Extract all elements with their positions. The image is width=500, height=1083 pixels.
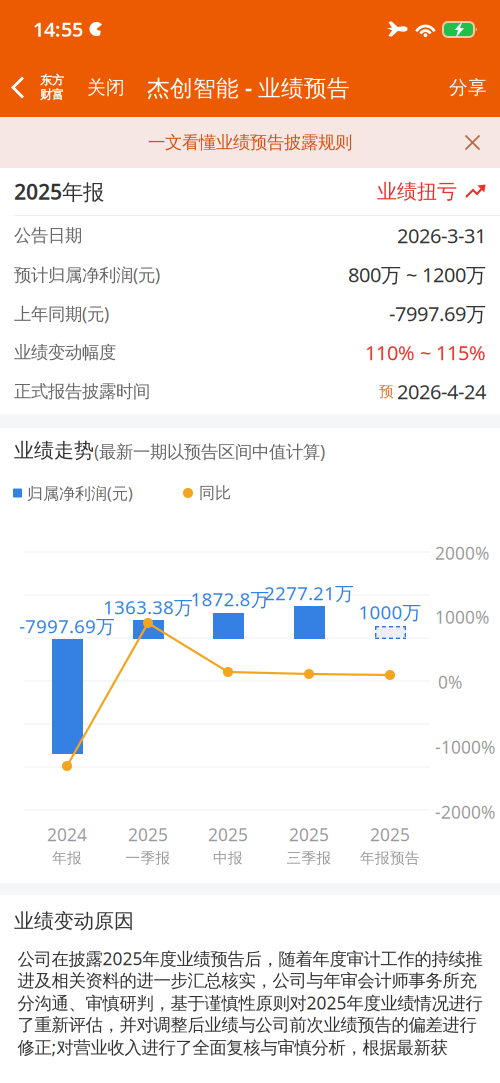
- staticText: (最新一期以预告区间中值计算): [94, 440, 325, 463]
- staticText: 东方: [40, 73, 64, 87]
- staticText: 年报预告: [360, 849, 420, 867]
- staticText: 三季报: [286, 849, 331, 867]
- staticText: 2026-4-24: [397, 378, 486, 405]
- staticText: 同比: [199, 483, 231, 503]
- staticText: 一季报: [125, 849, 170, 867]
- staticText: 业绩变动原因: [14, 909, 134, 933]
- staticText: 分享: [449, 76, 487, 99]
- button[interactable]: 分享: [437, 62, 500, 112]
- staticText: 2000%: [435, 541, 489, 564]
- staticText: -2000%: [435, 800, 495, 823]
- staticText: -1000%: [435, 735, 495, 758]
- staticText: -7997.69万: [389, 300, 486, 327]
- staticText: 2025: [128, 823, 168, 846]
- staticText: 正式报告披露时间: [14, 381, 150, 402]
- staticText: 业绩变动幅度: [14, 342, 116, 363]
- button[interactable]: 关闭横幅: [450, 120, 500, 165]
- button[interactable]: 关闭: [70, 62, 142, 112]
- staticText: 预计归属净利润(元): [14, 263, 160, 286]
- staticText: -7997.69万: [19, 614, 115, 638]
- staticText: 2025: [370, 823, 410, 846]
- staticText: 800万 ~ 1200万: [348, 261, 486, 288]
- staticText: 1000%: [435, 605, 489, 628]
- staticText: 业绩扭亏: [377, 179, 457, 204]
- staticText: 杰创智能 - 业绩预告: [147, 72, 350, 102]
- staticText: 110% ~ 115%: [365, 339, 486, 366]
- staticText: 公告日期: [14, 225, 82, 246]
- staticText: 关闭: [87, 76, 125, 99]
- staticText: 0%: [438, 670, 462, 693]
- staticText: 归属净利润(元): [27, 482, 133, 504]
- button[interactable]: 返回东方财富: [0, 62, 70, 112]
- staticText: 2025: [208, 823, 248, 846]
- staticText: 14:55: [33, 16, 83, 42]
- staticText: 一文看懂业绩预告披露规则: [148, 132, 352, 153]
- staticText: 2277.21万: [264, 581, 354, 605]
- staticText: 1363.38万: [103, 595, 193, 619]
- staticText: 2026-3-31: [397, 222, 486, 249]
- staticText: 业绩走势: [14, 438, 94, 463]
- staticText: 年报: [52, 849, 82, 867]
- staticText: 公司在披露2025年度业绩预告后，随着年度审计工作的持续推进及相关资料的进一步汇…: [17, 947, 482, 1059]
- staticText: 2025: [289, 823, 329, 846]
- staticText: 2024: [47, 823, 87, 846]
- staticText: 预: [379, 382, 394, 400]
- staticText: 1872.8万: [190, 587, 269, 611]
- staticText: 2025年报: [14, 177, 104, 206]
- staticText: 中报: [213, 849, 243, 867]
- staticText: 财富: [40, 87, 64, 102]
- staticText: 1000万: [358, 600, 421, 624]
- staticText: 上年同期(元): [14, 302, 109, 325]
